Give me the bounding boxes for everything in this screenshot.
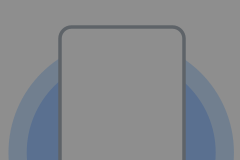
button[interactable]: Device preview — [0, 0, 240, 160]
